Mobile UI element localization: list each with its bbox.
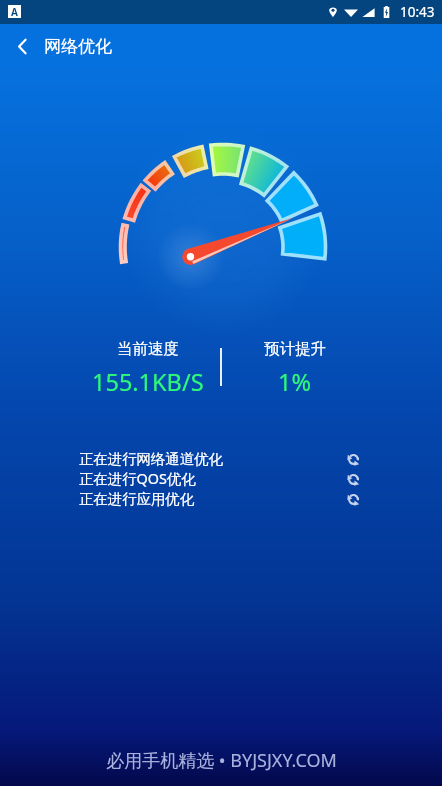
staticText: 10:43 [400,3,435,21]
staticText: 网络优化 [44,36,112,57]
staticText: A [11,5,18,18]
staticText: 正在进行网络通道优化 [79,450,223,468]
staticText: 正在进行应用优化 [79,490,195,508]
staticText: 正在进行QOS优化 [79,469,196,489]
button[interactable]: 正在进行网络通道优化 [79,449,360,469]
staticText: 155.1KB/S [92,366,204,398]
staticText: 必用手机精选 • BYJSJXY.COM [106,748,337,773]
other: Refreshing [347,493,360,506]
other: Refreshing [347,473,360,486]
staticText: 预计提升 [264,339,326,359]
button[interactable]: Back [0,24,44,68]
button[interactable]: 正在进行QOS优化 [79,469,360,489]
staticText: 当前速度 [117,339,179,359]
staticText: 1% [278,366,311,398]
other: Refreshing [347,453,360,466]
button[interactable]: 正在进行应用优化 [79,489,360,509]
